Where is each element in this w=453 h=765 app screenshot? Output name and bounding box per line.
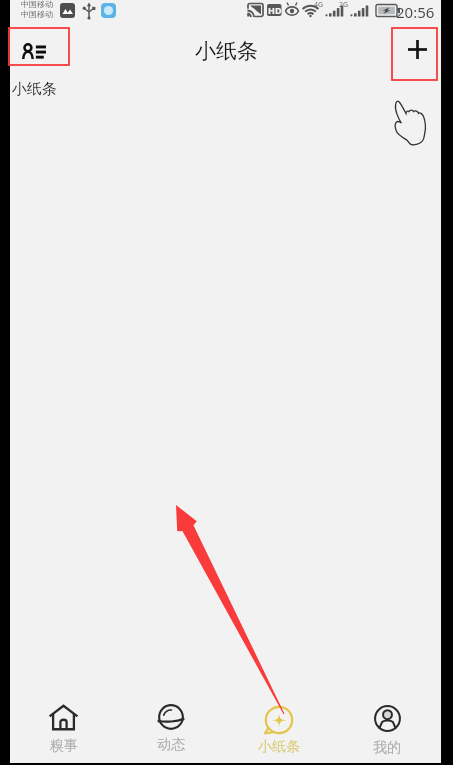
staticText: 动态 xyxy=(157,736,185,754)
staticText: 小纸条 xyxy=(12,80,57,99)
staticText: 2G xyxy=(339,0,349,10)
button[interactable]: 糗事 xyxy=(10,685,117,755)
button[interactable]: 小纸条 xyxy=(225,685,333,756)
staticText: 中国移动 xyxy=(21,9,53,19)
staticText: HD xyxy=(268,4,282,16)
staticText: 小纸条 xyxy=(258,738,300,756)
staticText: 小纸条 xyxy=(195,38,258,64)
staticText: 我的 xyxy=(373,739,401,757)
button[interactable]: 我的 xyxy=(333,685,441,757)
button[interactable]: Contacts xyxy=(10,31,70,68)
staticText: 糗事 xyxy=(50,737,78,755)
button[interactable]: 动态 xyxy=(117,685,225,754)
staticText: 中国移动 xyxy=(21,0,53,9)
staticText: 20:56 xyxy=(396,2,435,22)
button[interactable]: Add xyxy=(395,23,440,75)
staticText: 4G xyxy=(314,0,324,10)
